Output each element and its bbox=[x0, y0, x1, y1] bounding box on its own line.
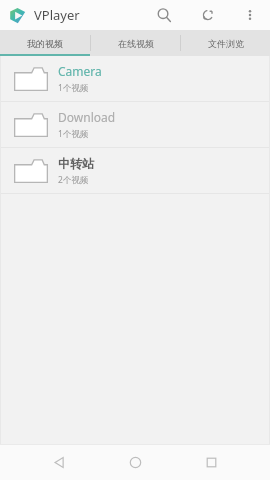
staticText: 文件浏览 bbox=[208, 38, 244, 49]
button[interactable]: Recents bbox=[194, 445, 228, 479]
staticText: VPlayer bbox=[34, 6, 80, 24]
staticText: 中转站 bbox=[58, 156, 94, 171]
staticText: 2个视频 bbox=[58, 174, 89, 186]
button[interactable]: Download bbox=[0, 102, 270, 147]
button[interactable]: 我的视频 bbox=[0, 30, 90, 56]
button[interactable]: Camera bbox=[0, 56, 270, 101]
staticText: 1个视频 bbox=[58, 128, 89, 140]
staticText: Camera bbox=[58, 63, 102, 79]
button[interactable]: 中转站 bbox=[0, 148, 270, 193]
staticText: 我的视频 bbox=[27, 38, 63, 49]
staticText: 1个视频 bbox=[58, 82, 89, 94]
button[interactable]: Back bbox=[42, 445, 76, 479]
staticText: 在线视频 bbox=[118, 38, 154, 49]
staticText: Download bbox=[58, 109, 116, 125]
button[interactable]: More options bbox=[238, 3, 262, 27]
button[interactable]: Refresh bbox=[196, 3, 220, 27]
button[interactable]: Search bbox=[152, 3, 176, 27]
button[interactable]: Home bbox=[118, 445, 152, 479]
button[interactable]: 在线视频 bbox=[91, 30, 180, 56]
button[interactable]: 文件浏览 bbox=[181, 30, 270, 56]
